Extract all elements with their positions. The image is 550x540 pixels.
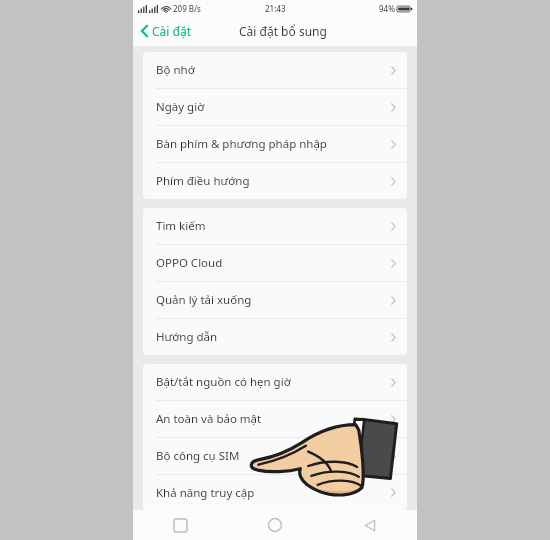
staticText: Quản lý tải xuống [156, 292, 252, 308]
button[interactable]: Back [322, 510, 417, 540]
button[interactable]: Home [227, 510, 322, 540]
button[interactable]: Bàn phím & phương pháp nhập [143, 126, 407, 162]
button[interactable]: Quản lý tải xuống [143, 282, 407, 318]
button[interactable]: Bộ nhớ [143, 52, 407, 88]
staticText: Ngày giờ [156, 99, 205, 115]
staticText: Cài đặt [152, 23, 192, 39]
staticText: 21:43 [265, 3, 286, 14]
button[interactable]: Recent apps [133, 510, 227, 540]
staticText: Khả năng truy cập [156, 485, 255, 501]
button[interactable]: Cài đặt [133, 16, 202, 46]
button[interactable]: Khả năng truy cập [143, 475, 407, 510]
button[interactable]: OPPO Cloud [143, 245, 407, 281]
staticText: 94% [379, 3, 395, 14]
staticText: Bật/tắt nguồn có hẹn giờ [156, 374, 291, 390]
button[interactable]: Tìm kiếm [143, 208, 407, 244]
button[interactable]: Hướng dẫn [143, 319, 407, 355]
button[interactable]: Ngày giờ [143, 89, 407, 125]
staticText: Cài đặt bổ sung [239, 23, 327, 39]
button[interactable]: An toàn và bảo mật [143, 401, 407, 437]
staticText: OPPO Cloud [156, 255, 223, 271]
staticText: 209 B/s [173, 3, 202, 14]
button[interactable]: Phím điều hướng [143, 163, 407, 199]
staticText: Bộ nhớ [156, 62, 195, 78]
button[interactable]: Bộ công cụ SIM [143, 438, 407, 474]
staticText: Bàn phím & phương pháp nhập [156, 136, 327, 152]
button[interactable]: Bật/tắt nguồn có hẹn giờ [143, 364, 407, 400]
staticText: Phím điều hướng [156, 173, 250, 189]
staticText: Tìm kiếm [156, 218, 206, 234]
staticText: Bộ công cụ SIM [156, 448, 240, 464]
staticText: Hướng dẫn [156, 329, 218, 345]
staticText: An toàn và bảo mật [156, 411, 262, 427]
